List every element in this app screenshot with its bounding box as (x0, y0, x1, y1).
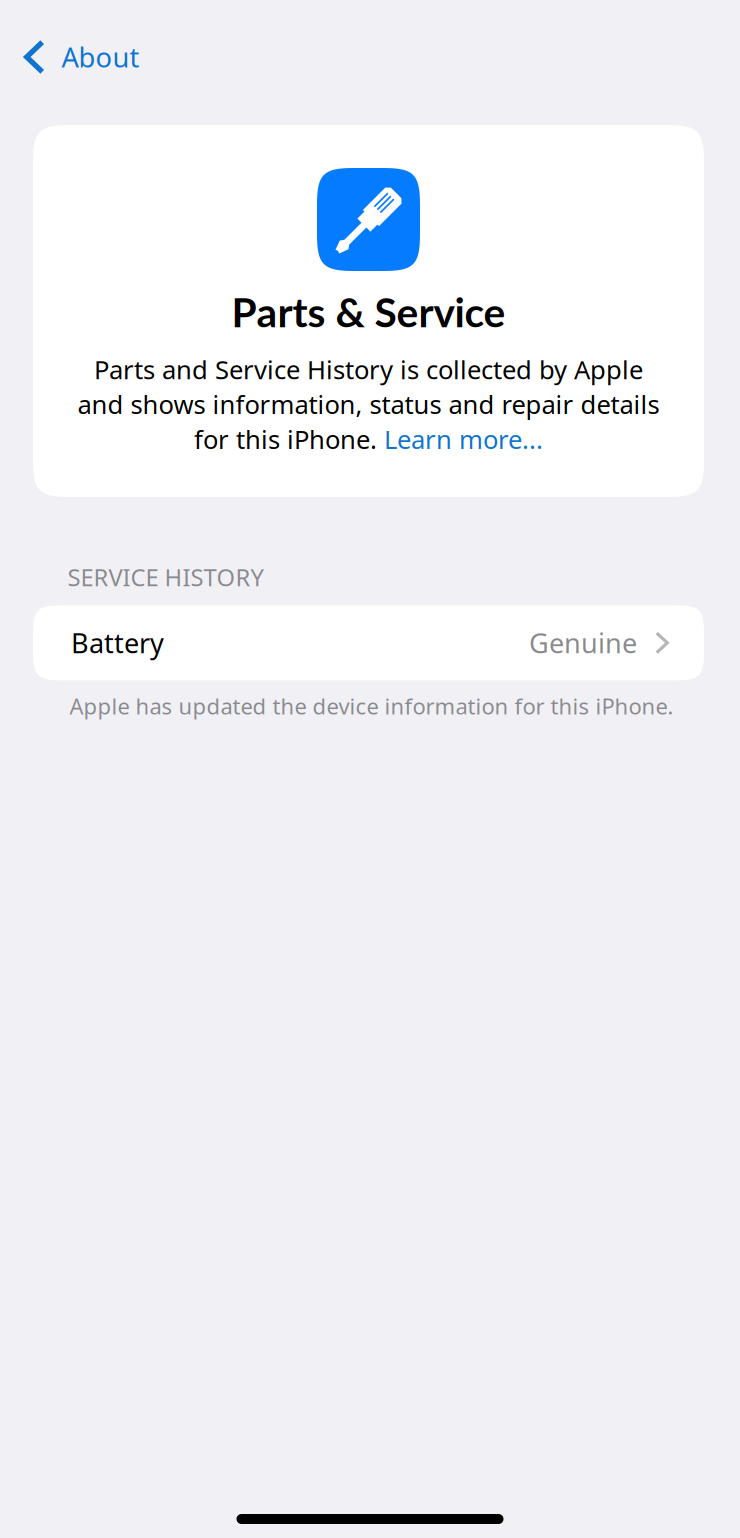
staticText: Apple has updated the device information… (69, 691, 673, 721)
button[interactable]: Learn more... (384, 421, 543, 456)
staticText: About (61, 38, 139, 76)
staticText: Genuine (529, 624, 637, 661)
button[interactable]: About (0, 0, 740, 79)
staticText: SERVICE HISTORY (67, 561, 263, 593)
staticText: Battery (71, 624, 164, 661)
button[interactable]: Battery (33, 605, 704, 680)
staticText: Parts and Service History is collected b… (94, 352, 643, 387)
staticText: and shows information, status and repair… (77, 387, 659, 422)
staticText: Learn more... (384, 421, 543, 456)
staticText: for this iPhone. (194, 421, 384, 456)
staticText: Parts & Service (231, 287, 505, 336)
